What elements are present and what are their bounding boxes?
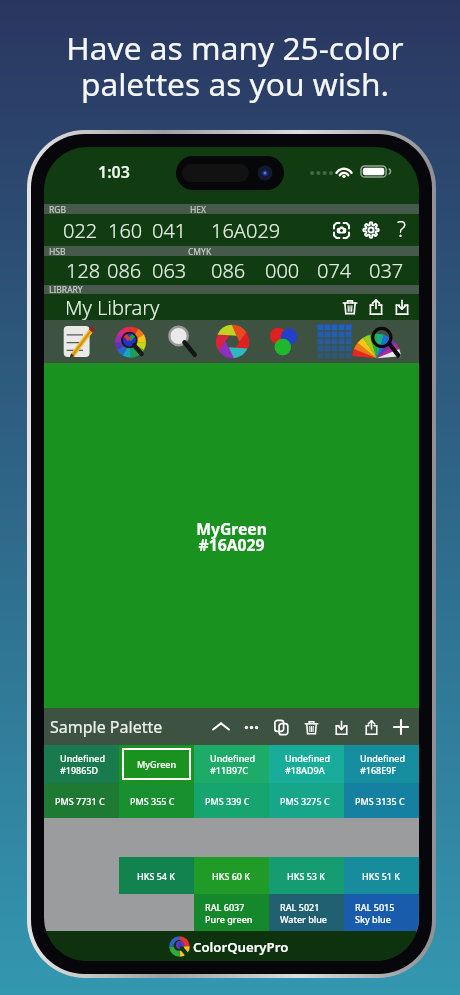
staticText: 086 — [211, 257, 246, 284]
button[interactable]: Undefined — [194, 745, 269, 783]
staticText: Undefined — [285, 752, 331, 764]
button[interactable]: Collapse — [206, 712, 236, 742]
button[interactable]: PMS 355 C — [119, 783, 194, 818]
staticText: HEX — [190, 204, 207, 214]
button[interactable]: Notes — [52, 320, 104, 363]
staticText: #18AD9A — [285, 764, 325, 776]
button[interactable]: Scan color — [326, 215, 356, 245]
staticText: Sky blue — [355, 913, 391, 925]
staticText: HSB — [49, 246, 66, 256]
staticText: Pure green — [205, 913, 253, 925]
staticText: ColorQueryPro — [193, 938, 289, 956]
button[interactable]: Help — [386, 215, 416, 245]
staticText: PMS 7731 C — [55, 795, 105, 807]
staticText: 086 — [107, 257, 142, 284]
staticText: RAL 6037 — [205, 901, 245, 913]
button[interactable]: Color picker — [360, 320, 411, 363]
button[interactable]: Shutter palette — [207, 320, 258, 363]
staticText: 074 — [317, 257, 352, 284]
button[interactable]: MyGreen #16A029 — [44, 363, 419, 708]
staticText: 16A029 — [211, 217, 281, 244]
staticText: PMS 3135 C — [355, 795, 405, 807]
button[interactable]: Share palette — [356, 712, 386, 742]
button[interactable]: PMS 339 C — [194, 783, 269, 818]
staticText: ? — [397, 215, 406, 244]
staticText: HKS 51 K — [362, 870, 401, 882]
staticText: PMS 339 C — [205, 795, 250, 807]
staticText: #19865D — [60, 764, 99, 776]
staticText: RGB — [49, 204, 67, 214]
button[interactable]: Undefined — [269, 745, 344, 783]
staticText: HKS 60 K — [212, 870, 251, 882]
button[interactable]: RAL 6037 — [194, 894, 269, 931]
button[interactable]: Save palette — [326, 712, 356, 742]
button[interactable]: Share library — [363, 294, 389, 320]
button[interactable]: ColorQueryPro — [44, 931, 419, 961]
staticText: PMS 3275 C — [280, 795, 330, 807]
button[interactable]: Duplicate — [266, 712, 296, 742]
button[interactable]: MyGreen — [119, 745, 194, 783]
button[interactable]: HKS 54 K — [119, 857, 194, 894]
button[interactable]: Settings — [356, 215, 386, 245]
button[interactable]: Search colors — [156, 320, 207, 363]
staticText: 022 — [63, 217, 98, 244]
staticText: PMS 355 C — [130, 795, 175, 807]
button[interactable]: RAL 5021 — [269, 894, 344, 931]
button[interactable]: HKS 53 K — [269, 857, 344, 894]
staticText: 160 — [108, 217, 143, 244]
staticText: RAL 5015 — [355, 901, 395, 913]
button[interactable]: Undefined — [44, 745, 119, 783]
staticText: #11B97C — [210, 764, 249, 776]
staticText: 063 — [152, 257, 187, 284]
button[interactable]: Delete palette — [296, 712, 326, 742]
staticText: Have as many 25-color palettes as you wi… — [66, 26, 404, 105]
staticText: HKS 53 K — [287, 870, 326, 882]
staticText: Undefined — [210, 752, 256, 764]
staticText: LIBRARY — [49, 284, 83, 293]
button[interactable]: More options — [236, 712, 266, 742]
staticText: 037 — [369, 257, 404, 284]
button[interactable]: RGB mix — [258, 320, 309, 363]
staticText: 000 — [265, 257, 300, 284]
button[interactable]: Undefined — [344, 745, 419, 783]
staticText: My Library — [65, 294, 160, 320]
staticText: CMYK — [188, 246, 212, 256]
staticText: Water blue — [280, 913, 328, 925]
staticText: RAL 5021 — [280, 901, 320, 913]
staticText: Undefined — [60, 752, 106, 764]
staticText: 1:03 — [98, 161, 130, 183]
button[interactable]: RAL 5015 — [344, 894, 419, 931]
staticText: MyGreen #16A029 — [196, 518, 267, 556]
button[interactable]: PMS 3275 C — [269, 783, 344, 818]
staticText: HKS 54 K — [137, 870, 176, 882]
staticText: MyGreen — [137, 758, 177, 770]
button[interactable]: Delete library — [337, 294, 363, 320]
button[interactable]: Add color — [386, 712, 416, 742]
staticText: Undefined — [360, 752, 406, 764]
button[interactable]: HKS 51 K — [344, 857, 419, 894]
staticText: 041 — [152, 217, 187, 244]
staticText: 128 — [66, 257, 101, 284]
button[interactable]: PMS 3135 C — [344, 783, 419, 818]
button[interactable]: Swatch grid — [309, 320, 360, 363]
button[interactable]: PMS 7731 C — [44, 783, 119, 818]
staticText: Sample Palette — [50, 716, 163, 738]
button[interactable]: HKS 60 K — [194, 857, 269, 894]
button[interactable]: Save library — [389, 294, 415, 320]
staticText: #168E9F — [360, 764, 397, 776]
button[interactable]: Color wheel — [104, 320, 156, 363]
